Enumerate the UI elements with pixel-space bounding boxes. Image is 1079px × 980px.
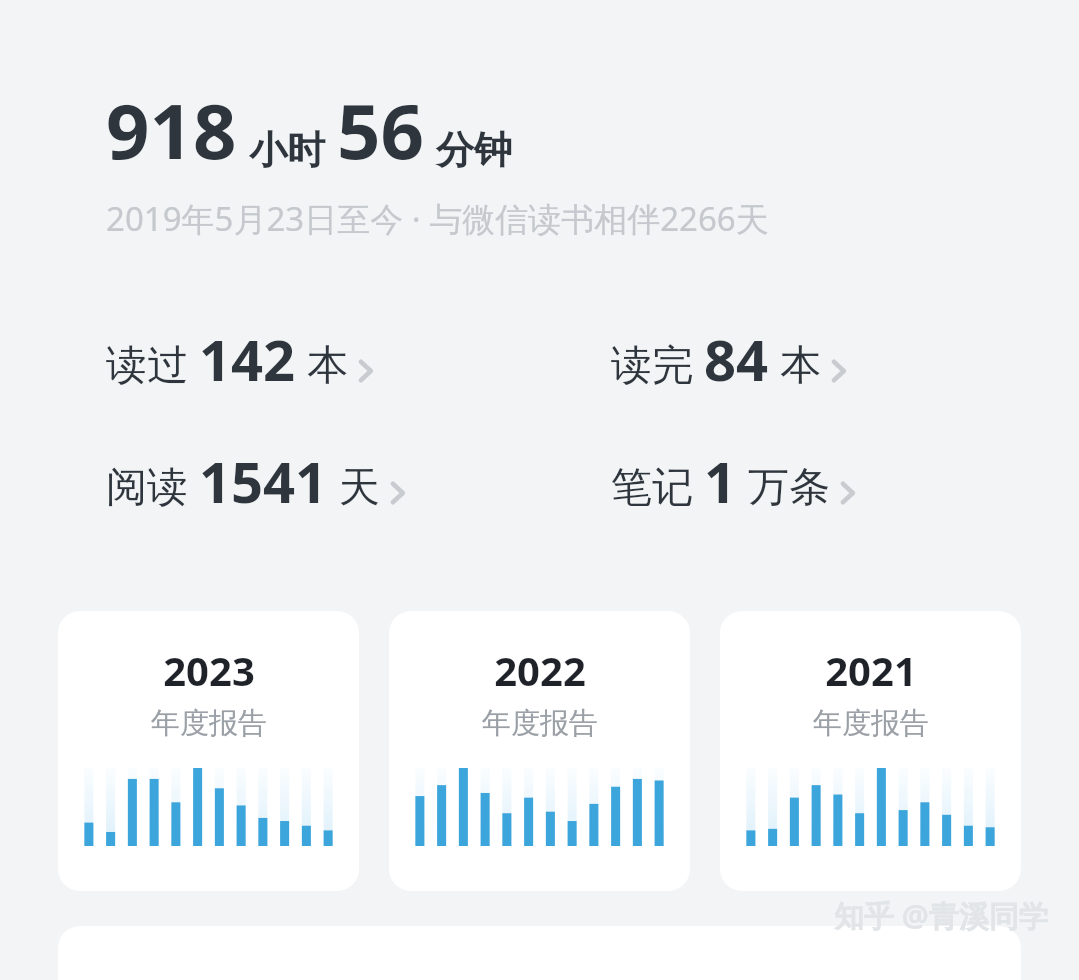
staticText: 2022 [494,643,586,697]
staticText: 2023 [163,643,255,697]
staticText: 56 [337,78,424,182]
button[interactable]: 读完 [611,319,847,399]
staticText: 读过 [106,340,188,392]
staticText: 2019年5月23日至今 · 与微信读书相伴2266天 [106,196,769,241]
staticText: 918 [106,78,237,182]
staticText: 本 [307,340,348,392]
button[interactable]: 读过 [106,319,374,399]
staticText: 知乎 @青溪同学 [834,895,1049,936]
staticText: 万条 [748,462,830,514]
staticText: 84 [704,321,769,397]
staticText: 年度报告 [151,705,267,742]
staticText: 笔记 [611,462,693,514]
staticText: 142 [199,321,296,397]
button[interactable]: 阅读 [106,441,406,521]
staticText: 年度报告 [813,705,929,742]
staticText: 年度报告 [482,705,598,742]
staticText: 分钟 [436,126,512,174]
button[interactable]: 2023 [58,611,359,891]
staticText: 2021 [825,643,917,697]
button[interactable]: 笔记 [611,441,856,521]
button[interactable]: 2022 [389,611,690,891]
button[interactable]: 2021 [720,611,1021,891]
staticText: 1 [704,443,737,519]
staticText: 本 [780,340,821,392]
staticText: 1541 [199,443,328,519]
staticText: 读完 [611,340,693,392]
staticText: 阅读 [106,462,188,514]
staticText: 小时 [249,126,325,174]
staticText: 天 [339,462,380,514]
